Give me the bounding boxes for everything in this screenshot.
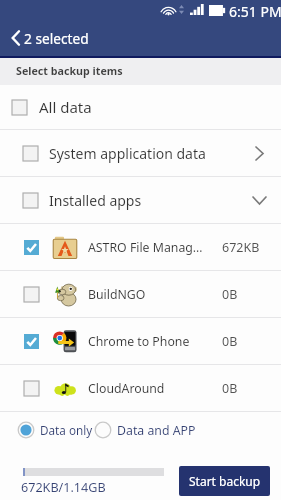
button[interactable]: System application data: [0, 130, 281, 176]
staticText: Select backup items: [16, 64, 123, 79]
button[interactable]: Back: [0, 20, 281, 56]
staticText: 0B: [222, 380, 238, 397]
other: Collapse installed apps: [252, 196, 267, 205]
button[interactable]: ASTRO File Manag…: [0, 224, 281, 270]
button[interactable]: Chrome to Phone: [0, 318, 281, 364]
staticText: Data and APP: [117, 422, 196, 439]
staticText: All data: [39, 97, 92, 117]
button[interactable]: Data and APP: [94, 421, 196, 439]
staticText: 6:51 PM: [229, 2, 281, 21]
other: Back: [11, 30, 20, 46]
button[interactable]: CloudAround: [0, 365, 281, 411]
staticText: 0B: [222, 286, 238, 303]
staticText: Chrome to Phone: [88, 333, 213, 350]
button[interactable]: Installed apps: [0, 177, 281, 223]
staticText: 0B: [222, 333, 238, 350]
button[interactable]: All data: [0, 85, 281, 129]
button[interactable]: BuildNGO: [0, 271, 281, 317]
staticText: ASTRO File Manag…: [88, 239, 213, 256]
staticText: Data only: [40, 422, 93, 438]
staticText: Start backup: [189, 473, 261, 489]
staticText: System application data: [49, 144, 206, 163]
other: Expand system application data: [255, 146, 264, 161]
button[interactable]: Start backup: [179, 466, 270, 496]
staticText: BuildNGO: [88, 286, 213, 303]
staticText: 2 selected: [24, 29, 89, 48]
staticText: Installed apps: [49, 191, 142, 210]
staticText: 672KB: [222, 239, 260, 256]
staticText: 672KB/1.14GB: [21, 479, 106, 496]
button[interactable]: Data only: [17, 421, 93, 439]
staticText: CloudAround: [88, 380, 213, 397]
